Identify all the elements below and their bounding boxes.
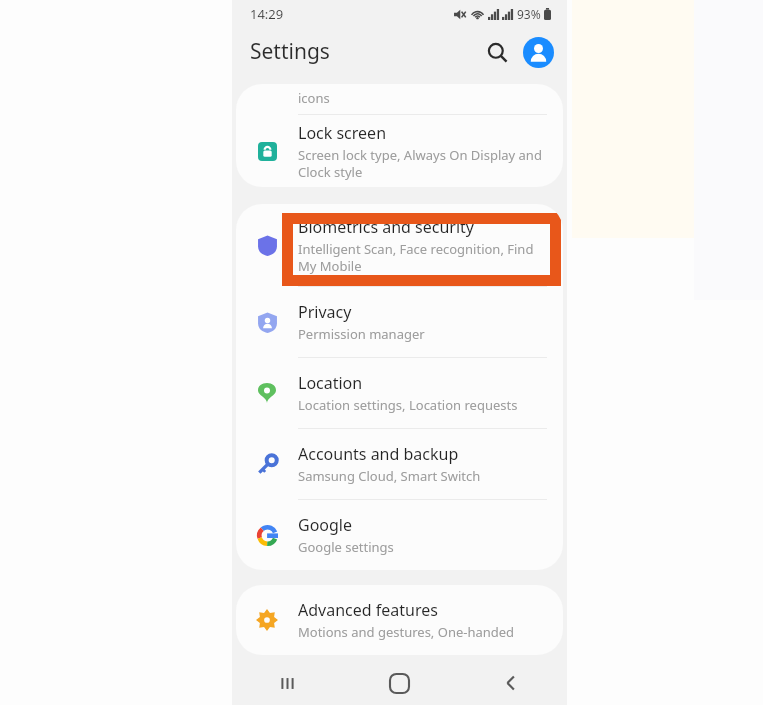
staticText: Permission manager (298, 325, 425, 343)
button[interactable]: Home (343, 661, 455, 705)
staticText: Location (298, 372, 363, 394)
staticText: Lock screen (298, 122, 387, 144)
button[interactable]: Biometrics and security (236, 204, 563, 286)
button[interactable]: Account (516, 30, 560, 74)
button[interactable]: Google (236, 500, 563, 570)
staticText: Location settings, Location requests (298, 396, 518, 414)
button[interactable]: Location (236, 358, 563, 428)
button[interactable]: Accounts and backup (236, 429, 563, 499)
staticText: 93% (517, 6, 541, 22)
staticText: Accounts and backup (298, 443, 459, 465)
staticText: icons (298, 89, 330, 107)
staticText: Motions and gestures, One-handed (298, 623, 515, 641)
staticText: Screen lock type, Always On Display and … (298, 146, 542, 181)
staticText: Samsung Cloud, Smart Switch (298, 467, 481, 485)
staticText: Google (298, 514, 353, 536)
button[interactable]: Recents (232, 661, 343, 705)
staticText: Intelligent Scan, Face recognition, Find… (298, 240, 534, 275)
staticText: Google settings (298, 538, 394, 556)
staticText: Privacy (298, 301, 352, 323)
button[interactable]: Privacy (236, 287, 563, 357)
button[interactable]: Search (475, 30, 519, 74)
button[interactable]: Back (455, 661, 567, 705)
button[interactable]: Lock screen (236, 115, 563, 187)
staticText: Biometrics and security (298, 216, 475, 238)
staticText: 14:29 (250, 5, 284, 23)
button[interactable]: Advanced features (236, 585, 563, 655)
staticText: Settings (250, 37, 330, 66)
staticText: Advanced features (298, 599, 438, 621)
